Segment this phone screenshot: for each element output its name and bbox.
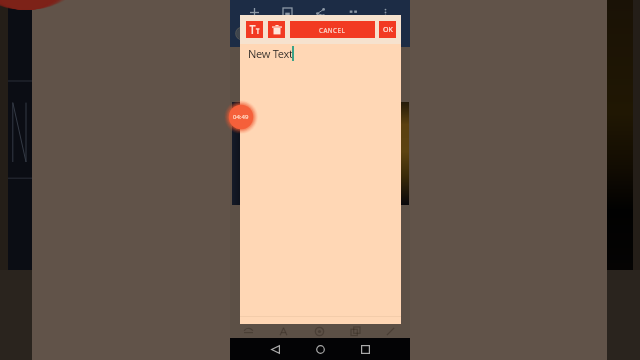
button[interactable]: Colour	[311, 324, 328, 338]
button[interactable]: Delete	[268, 21, 285, 38]
button[interactable]: Recents	[353, 340, 377, 358]
button[interactable]: Add	[246, 4, 262, 20]
button[interactable]: Save	[279, 4, 295, 20]
button[interactable]: Back	[263, 340, 287, 358]
staticText: New Text	[248, 46, 293, 61]
button[interactable]: Text size	[246, 21, 263, 38]
staticText: CANCEL	[319, 26, 346, 34]
button[interactable]: OK	[379, 21, 396, 38]
button[interactable]: Quote	[345, 4, 361, 20]
button[interactable]: Layers	[347, 324, 364, 338]
button[interactable]: Stickers	[240, 324, 257, 338]
button[interactable]: CANCEL	[290, 21, 375, 38]
button[interactable]: Text	[275, 324, 292, 338]
staticText: OK	[383, 25, 393, 35]
button[interactable]: More options	[377, 4, 393, 20]
button[interactable]: Share	[312, 4, 328, 20]
staticText: 04:49	[233, 113, 249, 121]
button[interactable]: Home	[308, 340, 332, 358]
other: Recording timer	[221, 97, 261, 137]
button[interactable]: Draw	[382, 324, 399, 338]
